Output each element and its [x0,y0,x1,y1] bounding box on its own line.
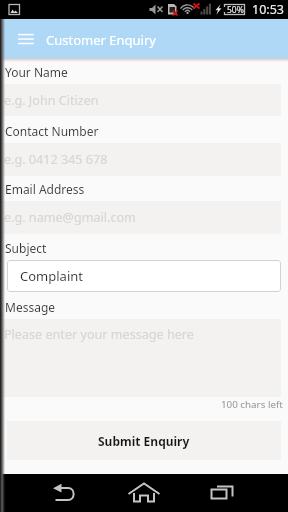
staticText: 10:53 [252,1,284,18]
button[interactable]: Recent apps [204,474,244,512]
staticText: Contact Number [5,123,99,139]
button[interactable]: Complaint [7,260,281,292]
staticText: Please enter your message here [4,326,194,343]
staticText: 100 chars left [221,398,283,411]
button[interactable]: e.g. name@gmail.com [0,201,281,234]
button[interactable]: Submit Enquiry [7,421,281,460]
staticText: Complaint [20,267,83,285]
button[interactable]: Please enter your message here [0,319,281,397]
button[interactable]: Back [44,474,84,512]
staticText: e.g. John Citizen [4,92,99,109]
staticText: e.g. name@gmail.com [4,209,136,226]
staticText: Customer Enquiry [46,31,156,49]
button[interactable]: Open navigation menu [14,30,38,47]
staticText: Subject [5,240,47,256]
staticText: 50% [227,4,244,16]
staticText: Your Name [5,64,68,80]
button[interactable]: Home [124,474,164,512]
staticText: Email Address [5,181,85,197]
staticText: Message [5,299,56,315]
staticText: Submit Enquiry [98,433,190,449]
staticText: e.g. 0412 345 678 [4,151,108,168]
button[interactable]: e.g. John Citizen [0,84,281,116]
button[interactable]: e.g. 0412 345 678 [0,143,281,176]
